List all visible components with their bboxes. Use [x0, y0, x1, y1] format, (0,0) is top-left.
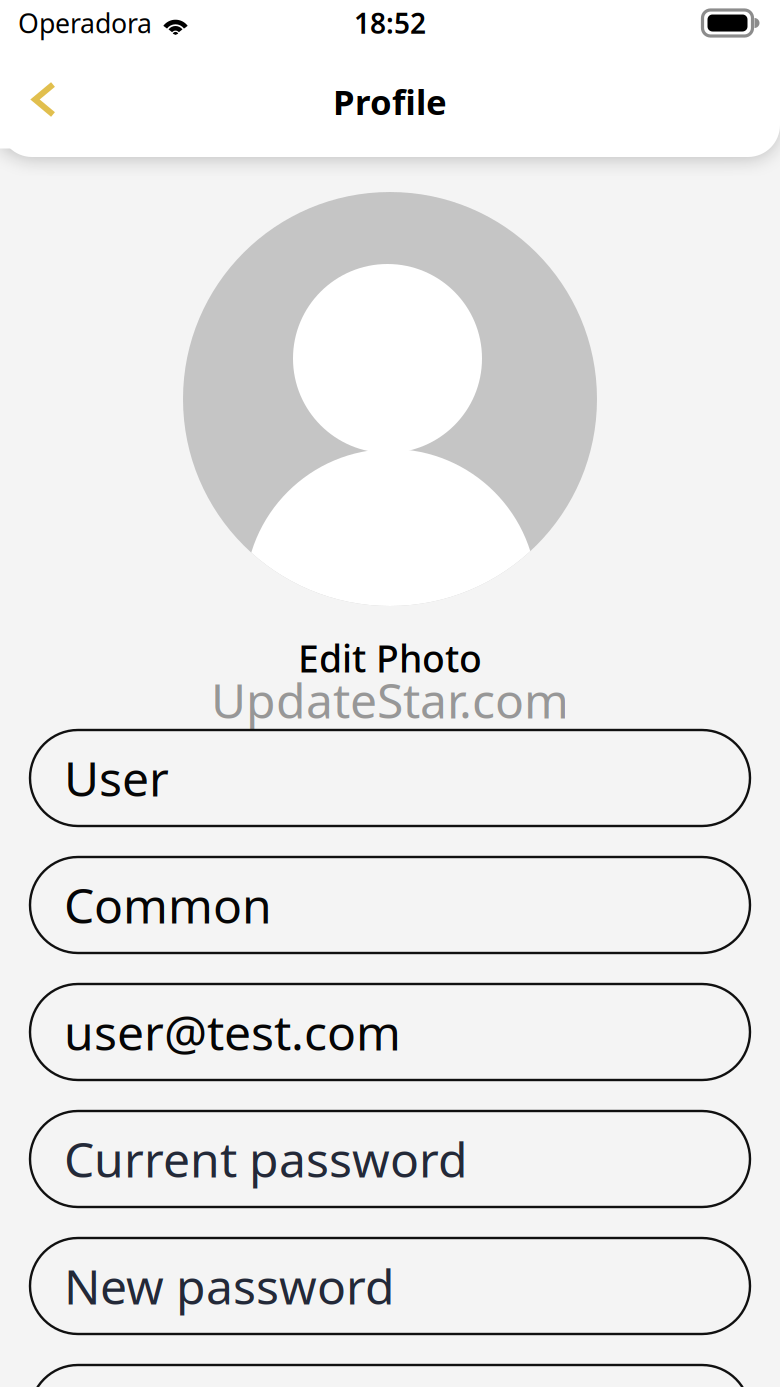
- button[interactable]: user@test.com: [30, 984, 750, 1080]
- staticText: UpdateStar.com: [211, 668, 569, 732]
- staticText: User: [64, 746, 169, 810]
- staticText: Profile: [333, 78, 447, 124]
- staticText: Operadora: [18, 5, 152, 41]
- staticText: Common: [64, 873, 272, 937]
- staticText: New password: [64, 1254, 395, 1318]
- staticText: 18:52: [354, 4, 426, 42]
- button[interactable]: Current password: [30, 1111, 750, 1207]
- button[interactable]: New password: [30, 1238, 750, 1334]
- button[interactable]: User: [30, 730, 750, 826]
- button[interactable]: Common: [30, 857, 750, 953]
- button[interactable]: Back: [0, 54, 84, 148]
- staticText: Current password: [64, 1127, 468, 1191]
- staticText: user@test.com: [64, 1000, 401, 1064]
- button[interactable]: Repeat password: [30, 1365, 750, 1387]
- staticText: Edit Photo: [298, 633, 482, 683]
